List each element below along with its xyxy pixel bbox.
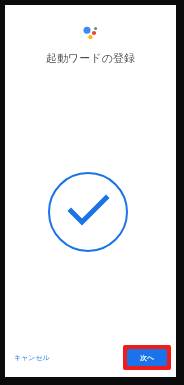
button[interactable]: 次へ	[127, 349, 167, 366]
staticText: 起動ワードの登録	[46, 51, 135, 65]
staticText: キャンセル	[14, 353, 50, 362]
other: Google Assistant	[81, 25, 101, 41]
button[interactable]: キャンセル	[9, 349, 55, 366]
staticText: 次へ	[140, 353, 155, 362]
